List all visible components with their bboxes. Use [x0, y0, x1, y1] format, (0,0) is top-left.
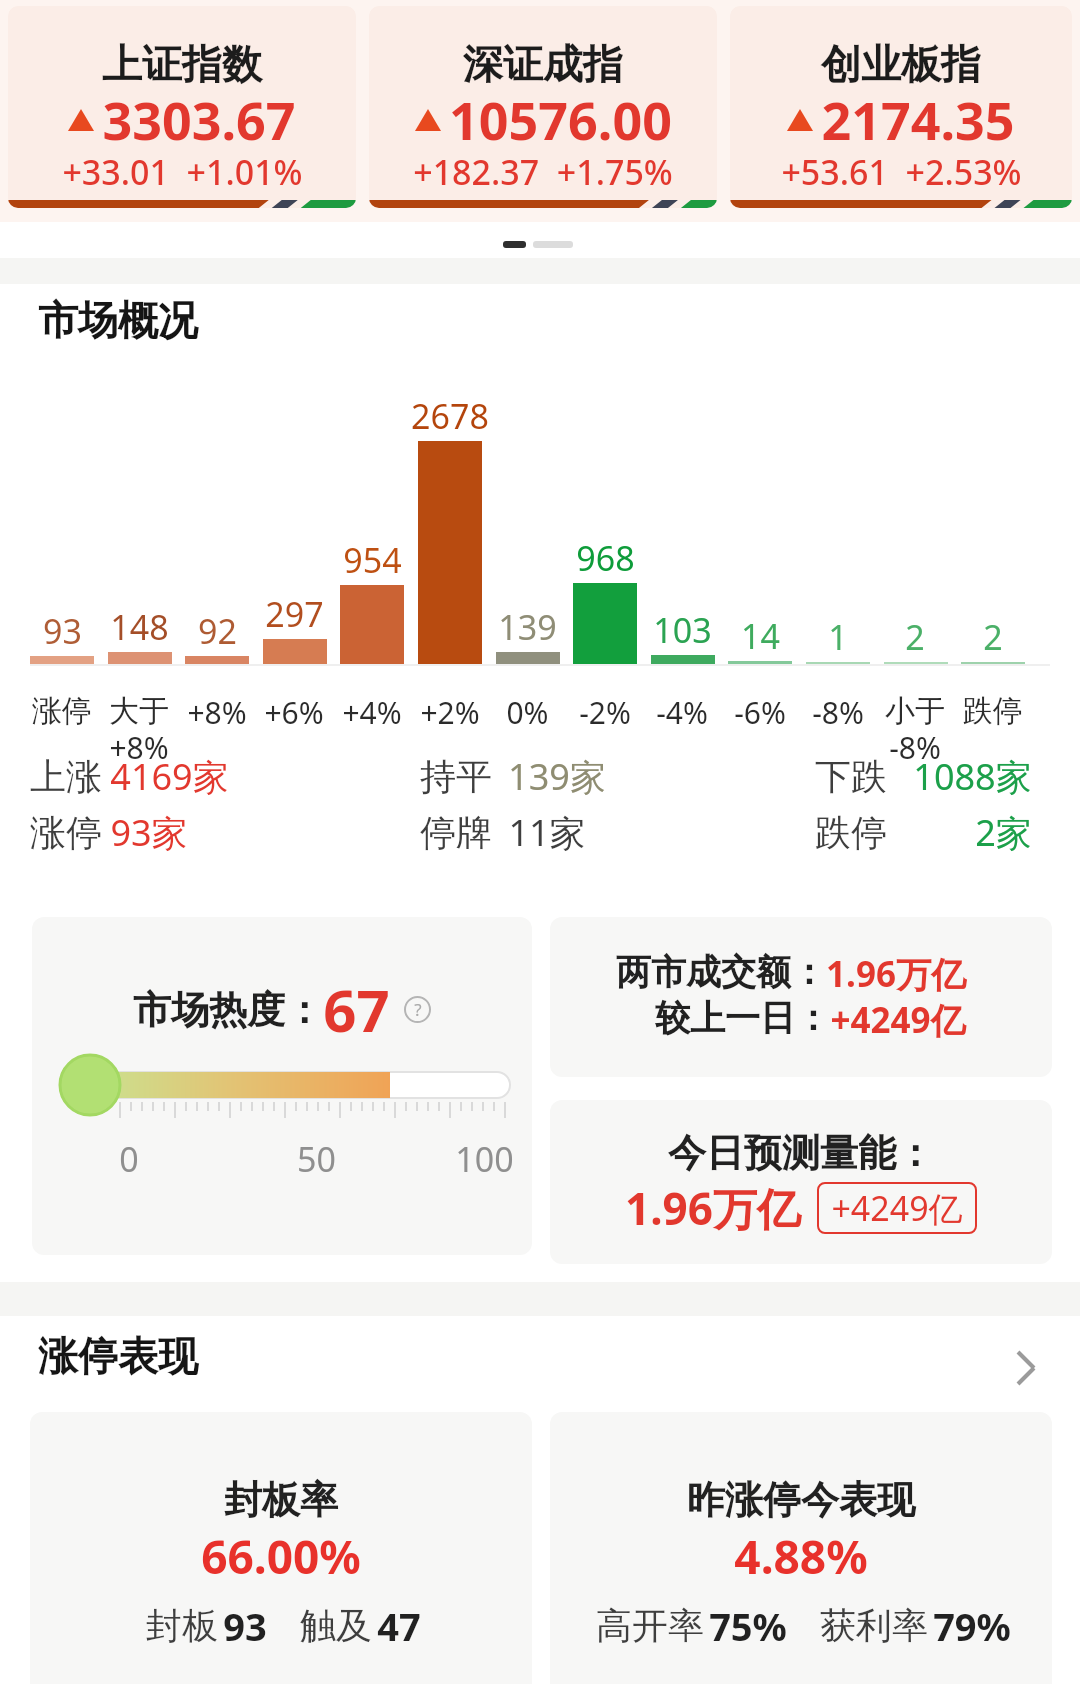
staticText: -8%: [812, 692, 864, 733]
staticText: 67: [323, 970, 390, 1049]
staticText: +33.01 +1.01%: [62, 149, 303, 195]
staticText: 2家: [975, 808, 1032, 857]
staticText: 高开率: [591, 1600, 709, 1649]
button[interactable]: 涨停表现: [0, 1326, 1080, 1386]
staticText: 2678: [411, 393, 489, 439]
staticText: 停牌: [420, 810, 492, 855]
staticText: 触及: [295, 1600, 377, 1649]
staticText: +4249亿: [831, 1185, 963, 1231]
staticText: +53.61 +2.53%: [781, 149, 1022, 195]
staticText: 持平: [420, 754, 492, 799]
staticText: 涨停表现: [38, 1331, 198, 1381]
staticText: 79%: [933, 1600, 1011, 1652]
staticText: 93: [223, 1600, 267, 1652]
staticText: 上涨: [30, 754, 102, 799]
staticText: 获利率: [815, 1600, 933, 1649]
staticText: 创业板指: [821, 39, 981, 89]
staticText: 跌停: [963, 692, 1023, 730]
staticText: 下跌: [815, 754, 887, 799]
button[interactable]: 今日预测量能：: [550, 1100, 1052, 1264]
button[interactable]: 两市成交额：: [550, 917, 1052, 1077]
staticText: 50: [297, 1136, 336, 1182]
button[interactable]: 封板率: [30, 1412, 532, 1684]
staticText: 148: [110, 604, 169, 650]
staticText: 93: [43, 608, 82, 654]
staticText: 139家: [508, 752, 606, 801]
staticText: 大于 +8%: [109, 692, 169, 768]
staticText: 上证指数: [102, 39, 262, 89]
button[interactable]: 昨涨停今表现: [550, 1412, 1052, 1684]
staticText: 两市成交额：: [616, 950, 826, 994]
staticText: 103: [653, 607, 712, 653]
staticText: +4%: [342, 692, 402, 733]
staticText: 1088家: [913, 752, 1032, 801]
staticText: 954: [343, 537, 402, 583]
button[interactable]: 深证成指: [369, 6, 717, 208]
button[interactable]: 创业板指: [730, 6, 1072, 208]
staticText: 14: [741, 613, 780, 659]
staticText: 市场热度：: [133, 986, 323, 1034]
staticText: 1.96万亿: [625, 1178, 801, 1238]
staticText: +4249亿: [830, 996, 966, 1044]
staticText: 297: [265, 591, 324, 637]
staticText: 涨停: [32, 692, 92, 730]
staticText: +8%: [187, 692, 247, 733]
staticText: 968: [576, 535, 635, 581]
staticText: 2: [983, 614, 1003, 660]
staticText: 4.88%: [734, 1525, 868, 1588]
staticText: 100: [455, 1136, 514, 1182]
staticText: -4%: [656, 692, 708, 733]
staticText: +2%: [420, 692, 480, 733]
staticText: 2174.35: [821, 84, 1015, 155]
staticText: 1.96万亿: [826, 950, 966, 998]
staticText: ?: [414, 998, 422, 1021]
staticText: 0: [119, 1136, 139, 1182]
button[interactable]: 上证指数: [8, 6, 356, 208]
staticText: 昨涨停今表现: [687, 1476, 915, 1524]
staticText: -6%: [734, 692, 786, 733]
staticText: 47: [377, 1600, 421, 1652]
staticText: 1: [828, 614, 848, 660]
staticText: 92: [198, 608, 237, 654]
staticText: 深证成指: [463, 39, 623, 89]
staticText: 3303.67: [102, 84, 296, 155]
staticText: 今日预测量能：: [668, 1129, 934, 1177]
staticText: +6%: [264, 692, 324, 733]
staticText: 较上一日：: [655, 996, 830, 1040]
button[interactable]: 市场热度：: [32, 917, 532, 1255]
staticText: 93家: [110, 808, 188, 857]
staticText: 10576.00: [449, 84, 672, 155]
staticText: 市场概况: [38, 295, 198, 345]
staticText: 75%: [709, 1600, 787, 1652]
staticText: 139: [498, 604, 557, 650]
staticText: 小于 -8%: [885, 692, 945, 768]
staticText: 11家: [508, 808, 586, 857]
staticText: -2%: [579, 692, 631, 733]
staticText: 66.00%: [201, 1525, 361, 1588]
staticText: 2: [905, 614, 925, 660]
staticText: 4169家: [110, 752, 229, 801]
staticText: 跌停: [815, 810, 887, 855]
staticText: 封板率: [224, 1476, 338, 1524]
staticText: 封板: [141, 1600, 223, 1649]
staticText: 涨停: [30, 810, 102, 855]
staticText: +182.37 +1.75%: [413, 149, 673, 195]
staticText: 0%: [506, 692, 549, 733]
